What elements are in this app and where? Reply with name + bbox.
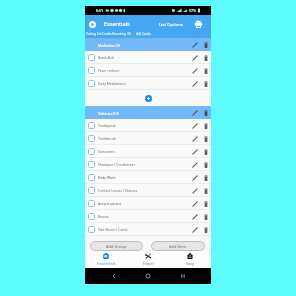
button[interactable]: Delete Daily Medications — [201, 79, 210, 88]
button[interactable]: Check Body Wash — [88, 174, 95, 181]
staticText: Daily Medications — [98, 81, 127, 86]
button[interactable]: Print — [193, 19, 203, 29]
staticText: Antiperspirant — [98, 201, 121, 206]
button[interactable]: Check Body Wash — [85, 171, 211, 184]
button[interactable]: Check Daily Medications — [88, 80, 95, 87]
button[interactable]: Add Group — [90, 241, 143, 251]
button[interactable]: Delete Antiperspirant — [201, 199, 210, 208]
staticText: 97% — [189, 8, 197, 13]
button[interactable]: Add item — [145, 95, 152, 102]
staticText: Fever reducer — [98, 68, 120, 73]
button[interactable]: Check Shampoo / Conditioner — [85, 158, 211, 171]
staticText: Shampoo / Conditioner — [98, 162, 136, 167]
button[interactable]: Edit Band-Aids — [190, 53, 199, 62]
staticText: Body Wash — [98, 175, 116, 180]
staticText: Essentials — [97, 261, 116, 266]
button[interactable]: Check Contact Lenses / Glasses — [88, 187, 95, 194]
button[interactable]: Check Antiperspirant — [85, 197, 211, 210]
button[interactable]: Edit Antiperspirant — [190, 199, 199, 208]
staticText: Contact Lenses / Glasses — [98, 188, 138, 193]
button[interactable]: Check Daily Medications — [85, 77, 211, 90]
button[interactable]: Delete Band-Aids — [201, 53, 210, 62]
button[interactable]: Check Antiperspirant — [88, 200, 95, 207]
button[interactable]: Add Item — [151, 241, 205, 251]
button[interactable]: Check Sunscreen — [88, 148, 95, 155]
button[interactable]: Edit Body Wash — [190, 173, 199, 182]
button[interactable]: Delete Razors — [201, 212, 210, 221]
staticText: Razors — [98, 214, 109, 219]
button[interactable]: Check Hair Brush / Comb — [88, 226, 95, 233]
button[interactable]: Check Toothbrush — [85, 132, 211, 145]
button[interactable]: Edit Shampoo / Conditioner — [190, 160, 199, 169]
button[interactable]: Check Shampoo / Conditioner — [88, 161, 95, 168]
button[interactable]: Check Razors — [85, 210, 211, 223]
button[interactable]: Add Credits — [136, 32, 152, 36]
staticText: List Options — [159, 21, 184, 27]
staticText: Hair Brush / Comb — [98, 227, 128, 232]
button[interactable]: Back — [108, 270, 120, 282]
staticText: Add Item — [169, 244, 187, 249]
button[interactable]: Check Sunscreen — [85, 145, 211, 158]
button[interactable]: Check Toothpaste — [85, 119, 211, 132]
button[interactable]: Edit Toothbrush — [190, 134, 199, 143]
button[interactable]: Check Band-Aids — [88, 54, 95, 61]
button[interactable]: Delete Contact Lenses / Glasses — [201, 186, 210, 195]
button[interactable]: Check Band-Aids — [85, 51, 211, 64]
button[interactable]: Delete Hair Brush / Comb — [201, 225, 210, 234]
button[interactable]: Edit group — [190, 40, 199, 49]
button[interactable]: Check Fever reducer — [85, 64, 211, 77]
button[interactable]: Medication (3) — [85, 38, 211, 51]
button[interactable]: Check Hair Brush / Comb — [85, 223, 211, 236]
button[interactable]: Edit Razors — [190, 212, 199, 221]
staticText: 6:51 — [96, 8, 104, 13]
button[interactable]: Delete Sunscreen — [201, 147, 210, 156]
button[interactable]: Check Fever reducer — [88, 67, 95, 74]
staticText: Add Group — [106, 244, 127, 249]
button[interactable]: Back — [89, 21, 96, 28]
button[interactable]: Edit Fever reducer — [190, 66, 199, 75]
button[interactable]: Check Razors — [88, 213, 95, 220]
button[interactable]: Toiletries (10) — [85, 106, 211, 119]
staticText: Medication (3) — [98, 43, 120, 47]
staticText: Packing List Credits Remaining (0) — [86, 32, 131, 36]
staticText: Essentials — [104, 20, 130, 28]
button[interactable]: Edit Contact Lenses / Glasses — [190, 186, 199, 195]
button[interactable]: Check Toothpaste — [88, 122, 95, 129]
button[interactable]: Delete Toothbrush — [201, 134, 210, 143]
button[interactable]: Check Contact Lenses / Glasses — [85, 184, 211, 197]
staticText: Travel — [142, 261, 154, 266]
button[interactable]: Check Toothbrush — [88, 135, 95, 142]
button[interactable]: Edit Toothpaste — [190, 121, 199, 130]
button[interactable]: Edit group — [190, 108, 199, 117]
button[interactable]: Delete group — [201, 108, 210, 117]
button[interactable]: Delete group — [201, 40, 210, 49]
button[interactable]: Delete Body Wash — [201, 173, 210, 182]
staticText: Bag — [186, 261, 194, 266]
button[interactable]: Delete Toothpaste — [201, 121, 210, 130]
button[interactable]: Edit Daily Medications — [190, 79, 199, 88]
button[interactable]: Recents — [177, 270, 189, 282]
button[interactable]: Delete Fever reducer — [201, 66, 210, 75]
staticText: Toiletries (10) — [98, 111, 119, 115]
staticText: Add Credits — [136, 32, 152, 36]
button[interactable]: Travel — [127, 251, 169, 268]
button[interactable]: Bag — [169, 251, 211, 268]
staticText: Band-Aids — [98, 55, 115, 60]
staticText: Toothbrush — [98, 136, 117, 141]
button[interactable]: Edit Sunscreen — [190, 147, 199, 156]
button[interactable]: Delete Shampoo / Conditioner — [201, 160, 210, 169]
button[interactable]: Essentials — [85, 251, 127, 268]
button[interactable]: Home — [142, 270, 154, 282]
staticText: Toothpaste — [98, 123, 116, 128]
staticText: Sunscreen — [98, 149, 115, 154]
button[interactable]: Edit Hair Brush / Comb — [190, 225, 199, 234]
button[interactable]: List Options — [158, 19, 185, 29]
